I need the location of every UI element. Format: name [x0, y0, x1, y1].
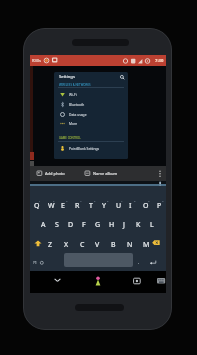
button[interactable]: Data usage	[56, 110, 126, 119]
staticText: Name album	[93, 171, 118, 176]
staticText: C	[80, 240, 85, 250]
staticText: M	[143, 240, 150, 250]
staticText: Bluetooth	[69, 102, 85, 106]
staticText: 7	[121, 199, 123, 202]
staticText: More	[69, 121, 78, 125]
staticText: Q	[34, 201, 40, 211]
staticText: Y	[102, 201, 106, 211]
staticText: P	[157, 201, 162, 211]
staticText: J	[123, 220, 125, 230]
staticText: Wi-Fi	[69, 92, 77, 96]
staticText: 4	[80, 199, 82, 202]
button[interactable]: PointBlank Settings	[56, 144, 126, 153]
staticText: L	[150, 220, 154, 230]
staticText: GAME CONTROL	[59, 136, 81, 140]
staticText: 2	[53, 199, 55, 202]
button[interactable]	[34, 240, 42, 247]
staticText: O	[143, 201, 149, 211]
button[interactable]	[152, 240, 160, 246]
staticText: G	[95, 220, 101, 230]
staticText: 0	[162, 199, 164, 202]
staticText: T	[89, 201, 93, 211]
button[interactable]	[120, 75, 125, 80]
button[interactable]: Bluetooth	[56, 100, 126, 109]
staticText: A	[41, 220, 46, 230]
staticText: V	[95, 240, 100, 250]
button[interactable]	[158, 170, 162, 178]
staticText: H	[109, 220, 115, 230]
button[interactable]: Add photo	[35, 169, 80, 179]
button[interactable]	[157, 181, 163, 187]
staticText: 6	[107, 199, 109, 202]
staticText: I	[129, 201, 132, 211]
staticText: U	[116, 201, 122, 211]
staticText: E	[61, 201, 65, 211]
button[interactable]	[133, 277, 141, 285]
staticText: R30s	[32, 58, 41, 63]
staticText: D	[68, 220, 74, 230]
staticText: 1	[39, 199, 41, 202]
button[interactable]: More	[56, 119, 126, 128]
button[interactable]: Wi-Fi	[56, 90, 126, 99]
staticText: 9	[148, 199, 150, 202]
staticText: S	[55, 220, 59, 230]
staticText: 5	[94, 199, 96, 202]
staticText: Data usage	[69, 112, 87, 116]
staticText: Z	[48, 240, 53, 250]
staticText: ?1	[33, 260, 37, 265]
staticText: PointBlank Settings	[69, 146, 100, 150]
staticText: B	[111, 240, 116, 250]
staticText: R	[75, 201, 80, 211]
staticText: K	[136, 220, 141, 230]
button[interactable]	[54, 278, 61, 283]
staticText: N	[127, 240, 133, 250]
button[interactable]	[94, 276, 102, 288]
staticText: Add photo	[45, 171, 65, 176]
staticText: W	[48, 201, 55, 211]
staticText: .	[138, 259, 140, 266]
staticText: Settings	[59, 74, 75, 80]
staticText: WIRELESS & NETWORKS	[59, 83, 91, 87]
staticText: 3	[66, 199, 68, 202]
staticText: 8	[134, 199, 136, 202]
staticText: F	[82, 220, 86, 230]
staticText: 7:30	[155, 58, 164, 64]
button[interactable]: Name album	[83, 169, 135, 179]
button[interactable]	[149, 260, 157, 266]
button[interactable]	[157, 278, 166, 285]
staticText: X	[64, 240, 69, 250]
